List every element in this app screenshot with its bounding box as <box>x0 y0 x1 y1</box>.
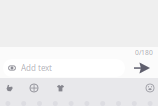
button[interactable]: Add text <box>3 59 125 77</box>
staticText: Add text <box>21 63 52 73</box>
staticText: 0/180 <box>135 48 153 57</box>
button[interactable]: Keyboard settings <box>142 80 158 96</box>
button[interactable]: Objects <box>49 80 72 96</box>
button[interactable]: Send <box>134 62 150 73</box>
button[interactable]: Frequently used <box>0 80 19 96</box>
button[interactable]: Travel and places <box>19 80 49 96</box>
